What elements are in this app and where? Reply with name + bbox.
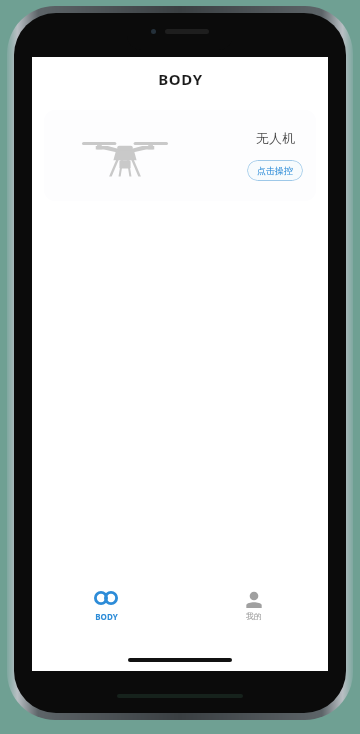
staticText: BODY: [95, 611, 118, 622]
button[interactable]: BODY: [32, 591, 180, 622]
staticText: 我的: [246, 611, 262, 621]
button[interactable]: 点击操控: [247, 160, 303, 181]
button[interactable]: 无人机: [44, 110, 316, 201]
staticText: BODY: [158, 69, 203, 89]
button[interactable]: 我的: [180, 591, 328, 621]
staticText: 点击操控: [257, 165, 293, 176]
staticText: 无人机: [256, 130, 295, 146]
